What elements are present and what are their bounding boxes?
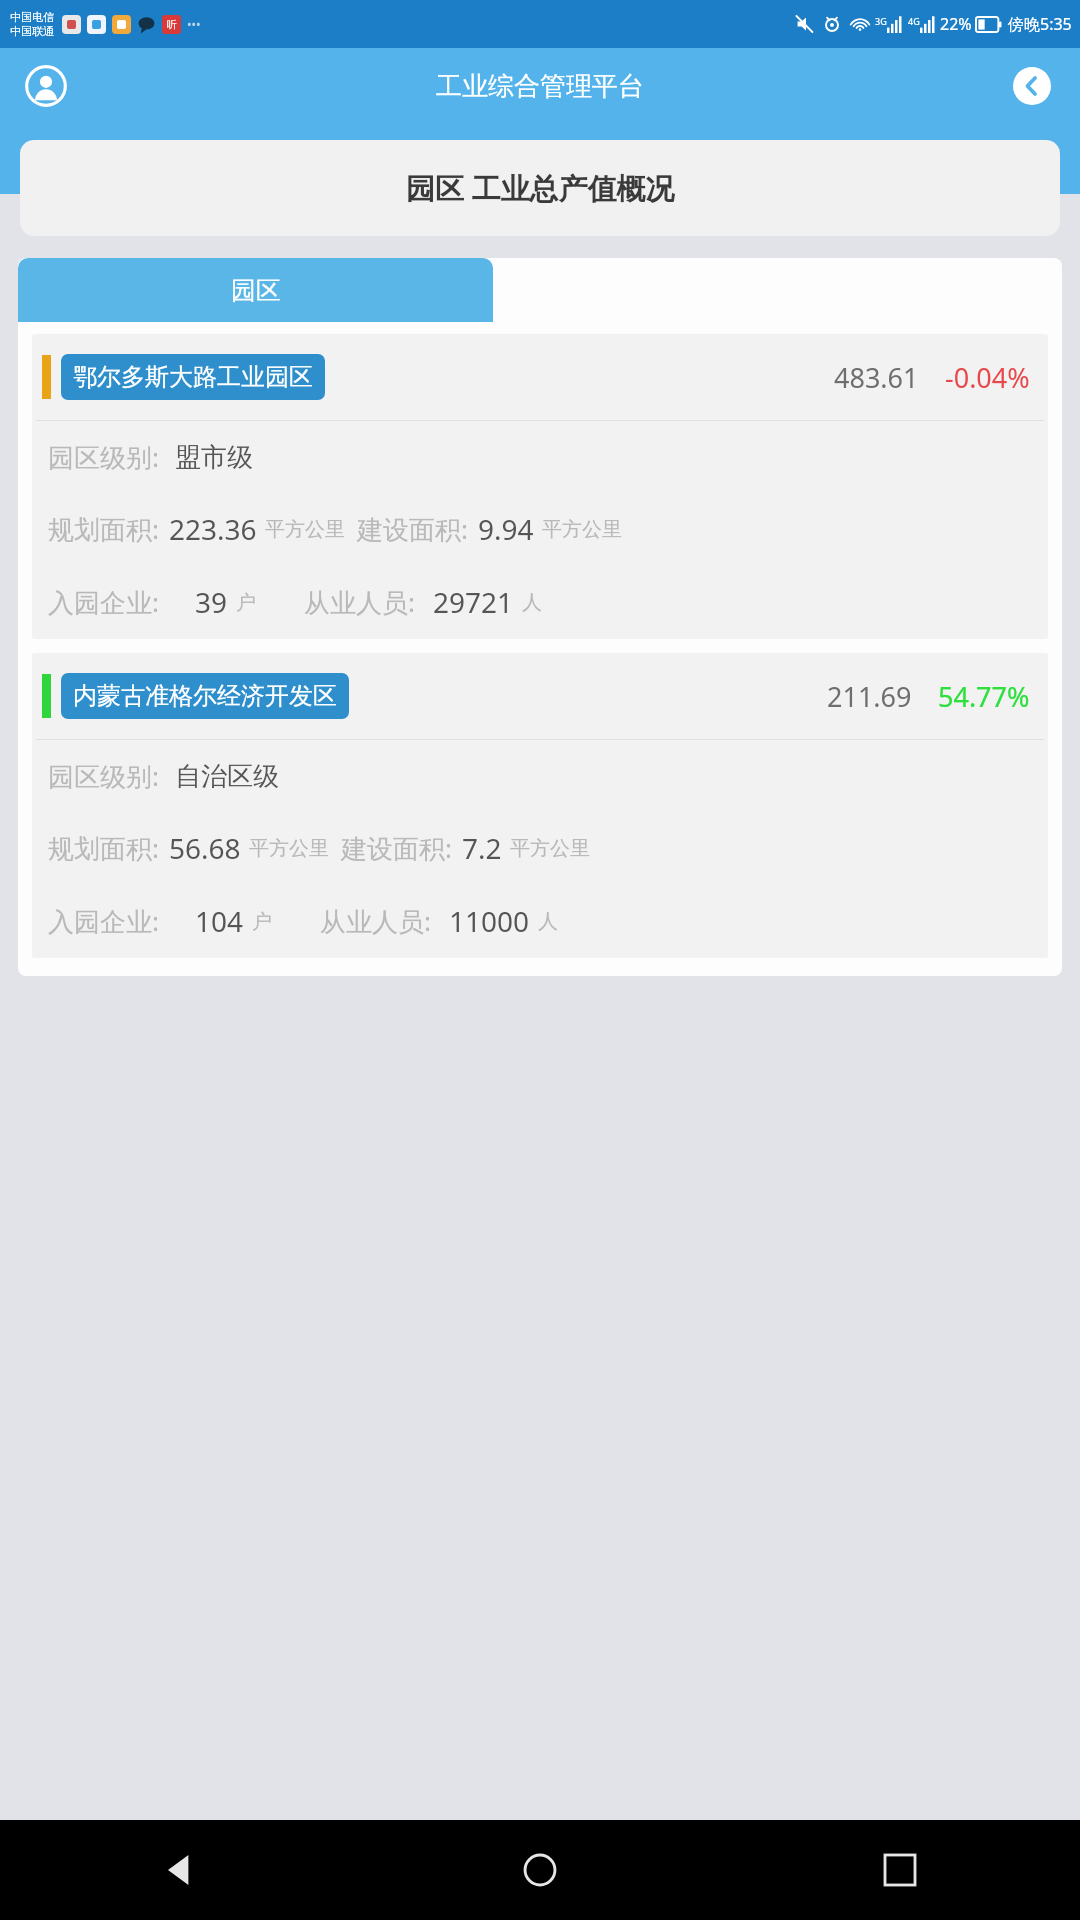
staticText: 中国电信 (10, 10, 54, 24)
staticText: 平方公里 (265, 517, 345, 542)
staticText: 11000 (449, 902, 530, 940)
staticText: 傍晚5:35 (1008, 13, 1072, 35)
staticText: 平方公里 (510, 836, 590, 861)
staticText: 3G (875, 15, 887, 27)
staticText: 听 (167, 18, 177, 31)
staticText: 自治区级 (175, 760, 279, 793)
staticText: 户 (252, 909, 272, 934)
button[interactable]: 最近任务 (720, 1820, 1080, 1920)
staticText: 从业人员: (304, 584, 415, 620)
staticText: 4G (908, 15, 920, 27)
staticText: 内蒙古准格尔经济开发区 (73, 681, 337, 711)
staticText: 483.61 (834, 359, 919, 396)
staticText: 规划面积: (48, 830, 159, 866)
button[interactable]: 返回 (1010, 64, 1054, 108)
staticText: 39 (195, 583, 228, 621)
staticText: 22% (940, 13, 972, 35)
button[interactable]: 内蒙古准格尔经济开发区 (32, 653, 1048, 958)
staticText: 平方公里 (542, 517, 622, 542)
staticText: 9.94 (478, 510, 534, 548)
staticText: 入园企业: (48, 584, 159, 620)
staticText: 工业综合管理平台 (436, 70, 644, 103)
staticText: 规划面积: (48, 511, 159, 547)
staticText: 平方公里 (249, 836, 329, 861)
staticText: 园区 工业总产值概况 (406, 168, 675, 208)
staticText: ••• (187, 16, 201, 32)
staticText: 104 (195, 902, 244, 940)
staticText: 园区级别: (48, 758, 159, 794)
staticText: 中国联通 (10, 24, 54, 38)
button[interactable]: 园区 工业总产值概况 (20, 140, 1060, 236)
staticText: 54.77% (938, 678, 1030, 715)
button[interactable]: 返回 (0, 1820, 360, 1920)
staticText: 园区级别: (48, 439, 159, 475)
staticText: 211.69 (827, 678, 912, 715)
staticText: 人 (522, 590, 542, 615)
staticText: 56.68 (169, 829, 241, 867)
staticText: 7.2 (462, 829, 502, 867)
button[interactable]: 鄂尔多斯大路工业园区 (32, 334, 1048, 639)
staticText: 建设面积: (357, 511, 468, 547)
staticText: 223.36 (169, 510, 257, 548)
staticText: 29721 (433, 583, 514, 621)
staticText: 入园企业: (48, 903, 159, 939)
button[interactable]: 账户 (22, 62, 70, 110)
staticText: 鄂尔多斯大路工业园区 (73, 362, 313, 392)
staticText: 从业人员: (320, 903, 431, 939)
staticText: 园区 (231, 275, 281, 306)
button[interactable]: 主页 (360, 1820, 720, 1920)
button[interactable]: 园区 (18, 258, 493, 322)
staticText: -0.04% (945, 359, 1030, 396)
staticText: 户 (236, 590, 256, 615)
staticText: 盟市级 (175, 441, 253, 474)
staticText: 人 (538, 909, 558, 934)
staticText: 建设面积: (341, 830, 452, 866)
